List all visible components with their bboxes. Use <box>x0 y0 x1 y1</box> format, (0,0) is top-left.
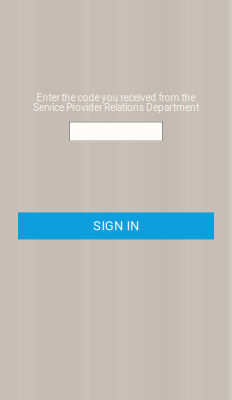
staticText: Enter the code you received from the <box>36 92 195 104</box>
staticText: Service Provider Relations Department <box>33 102 199 113</box>
staticText: SIGN IN <box>93 218 139 233</box>
button[interactable]: SIGN IN <box>18 212 214 239</box>
button[interactable]: Code <box>69 121 163 141</box>
